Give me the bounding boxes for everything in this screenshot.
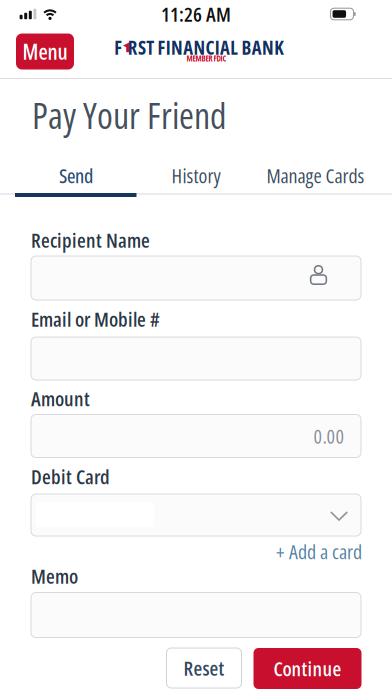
staticText: Send bbox=[59, 162, 93, 189]
button[interactable]: + Add a card bbox=[30, 541, 362, 561]
staticText: Continue bbox=[273, 655, 341, 682]
button[interactable]: Debit Card bbox=[31, 494, 361, 536]
staticText: MEMBER FDIC bbox=[186, 53, 226, 64]
button[interactable]: Continue bbox=[253, 648, 361, 689]
staticText: 0.00 bbox=[313, 423, 344, 449]
staticText: RST FINANCIAL BANK bbox=[128, 35, 284, 60]
staticText: Menu bbox=[22, 37, 67, 66]
staticText: Recipient Name bbox=[31, 227, 150, 253]
button[interactable]: Recipient Name bbox=[31, 256, 361, 300]
button[interactable]: Memo bbox=[31, 592, 361, 637]
button[interactable]: Amount bbox=[31, 414, 361, 457]
button[interactable]: Menu bbox=[16, 33, 74, 69]
staticText: Pay Your Friend bbox=[32, 91, 226, 139]
button[interactable]: Email or Mobile number bbox=[31, 337, 361, 380]
staticText: Amount bbox=[31, 385, 90, 412]
staticText: F bbox=[114, 35, 122, 60]
button[interactable]: Reset bbox=[166, 648, 241, 688]
staticText: Manage Cards bbox=[266, 162, 364, 189]
staticText: History bbox=[171, 162, 220, 189]
staticText: + Add a card bbox=[276, 538, 362, 565]
staticText: 11:26 AM bbox=[161, 1, 231, 27]
staticText: Reset bbox=[183, 655, 224, 681]
staticText: Memo bbox=[31, 563, 78, 589]
button[interactable]: History bbox=[137, 160, 255, 190]
button[interactable]: Send bbox=[17, 160, 135, 190]
staticText: Debit Card bbox=[31, 463, 110, 490]
button[interactable]: Manage Cards bbox=[256, 160, 374, 190]
staticText: Email or Mobile # bbox=[31, 306, 160, 332]
